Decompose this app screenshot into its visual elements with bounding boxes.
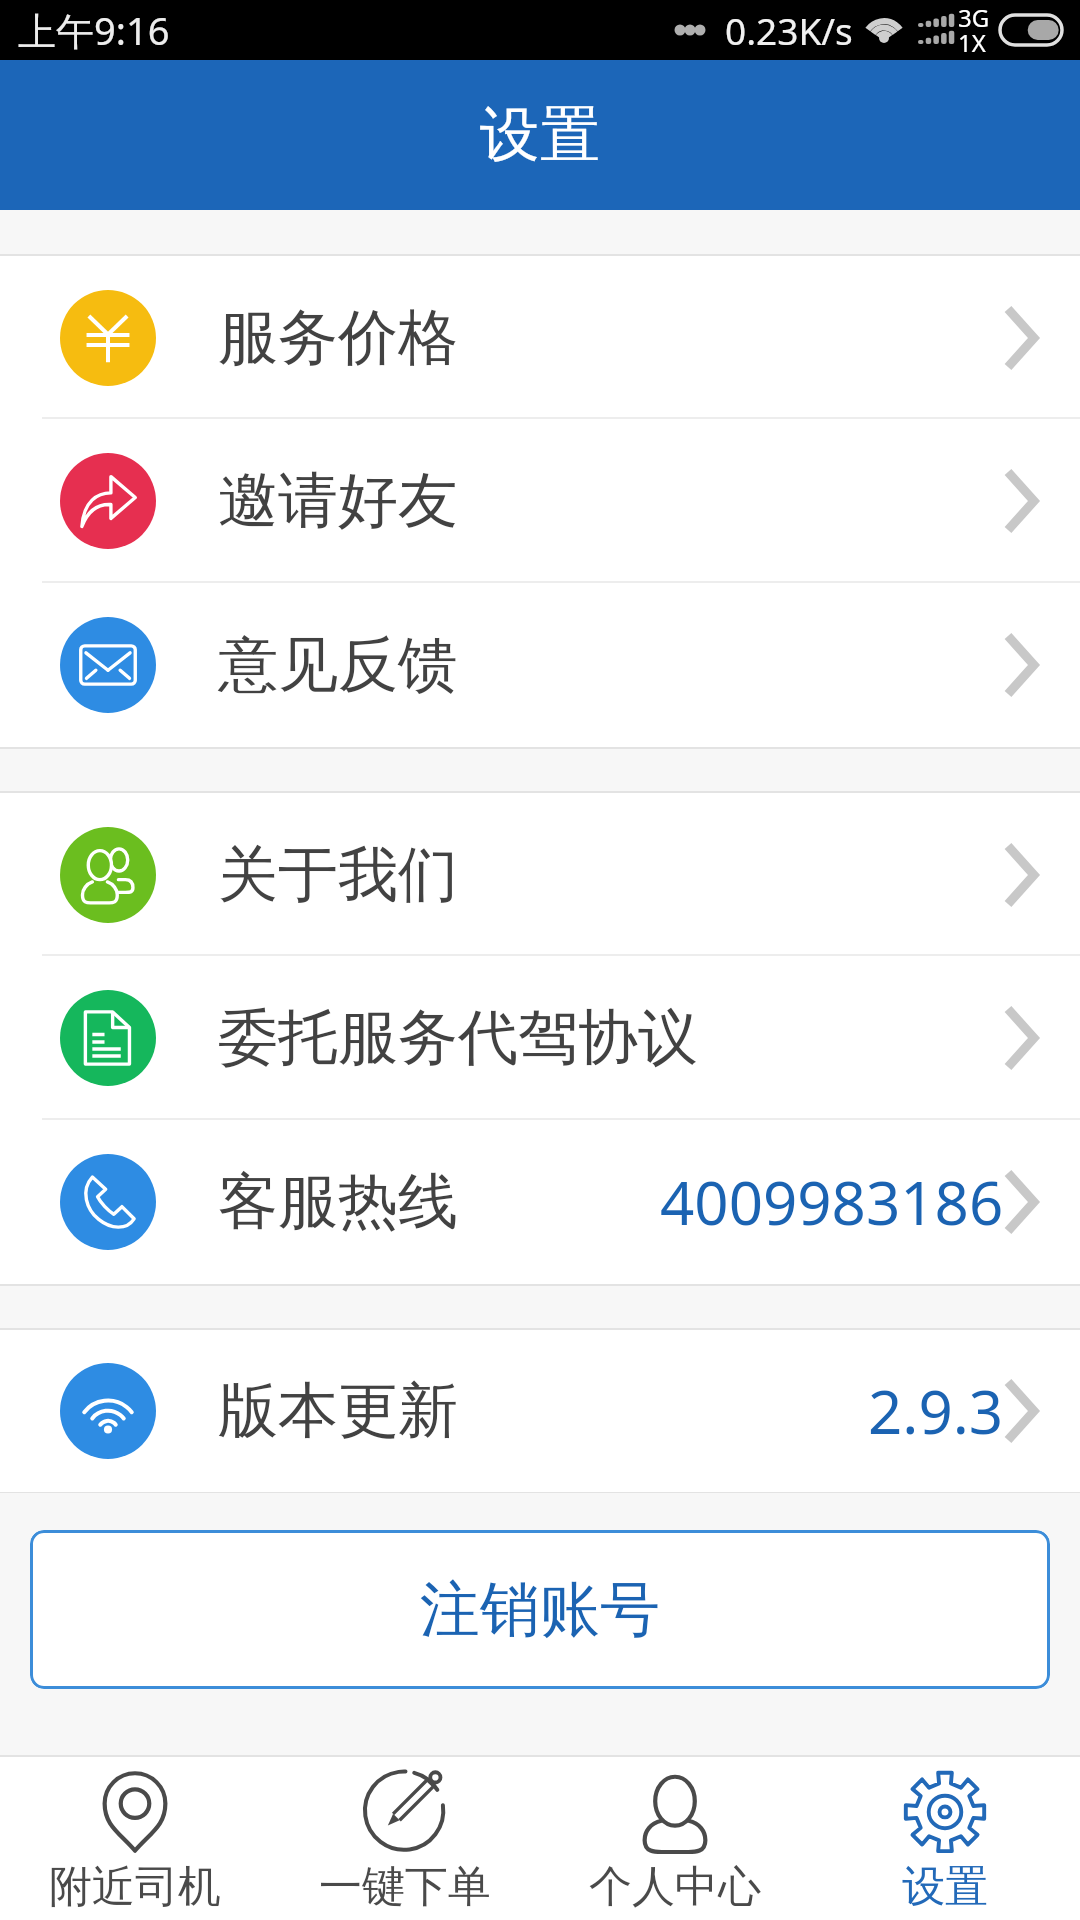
staticText: 版本更新 <box>218 1373 458 1449</box>
button[interactable]: 关于我们 <box>0 793 1080 956</box>
staticText: 设置 <box>902 1860 988 1914</box>
button[interactable]: 设置 <box>810 1763 1080 1914</box>
button[interactable]: 客服热线 <box>0 1120 1080 1284</box>
button[interactable]: 附近司机 <box>0 1763 270 1914</box>
staticText: 一键下单 <box>319 1860 491 1914</box>
button[interactable]: 一键下单 <box>270 1763 540 1914</box>
staticText: 意见反馈 <box>218 627 458 703</box>
button[interactable]: 邀请好友 <box>0 419 1080 583</box>
button[interactable]: 意见反馈 <box>0 583 1080 747</box>
staticText: 注销账号 <box>420 1572 660 1648</box>
staticText: 0.23K/s <box>725 5 853 55</box>
staticText: 附近司机 <box>49 1860 221 1914</box>
staticText: 个人中心 <box>589 1860 761 1914</box>
staticText: 服务价格 <box>218 300 458 376</box>
staticText: 关于我们 <box>218 837 458 913</box>
button[interactable]: 个人中心 <box>540 1763 810 1914</box>
button[interactable]: 委托服务代驾协议 <box>0 956 1080 1120</box>
staticText: 设置 <box>480 97 600 173</box>
button[interactable]: 版本更新 <box>0 1330 1080 1492</box>
staticText: 邀请好友 <box>218 463 458 539</box>
staticText: 客服热线 <box>218 1164 458 1240</box>
staticText: 委托服务代驾协议 <box>218 1000 698 1076</box>
button[interactable]: 注销账号 <box>30 1530 1050 1689</box>
staticText: 上午9:16 <box>18 4 170 56</box>
button[interactable]: 服务价格 <box>0 256 1080 419</box>
staticText: 2.9.3 <box>868 1370 1004 1452</box>
staticText: 3G 1X <box>958 1 990 59</box>
staticText: 4009983186 <box>660 1161 1004 1243</box>
